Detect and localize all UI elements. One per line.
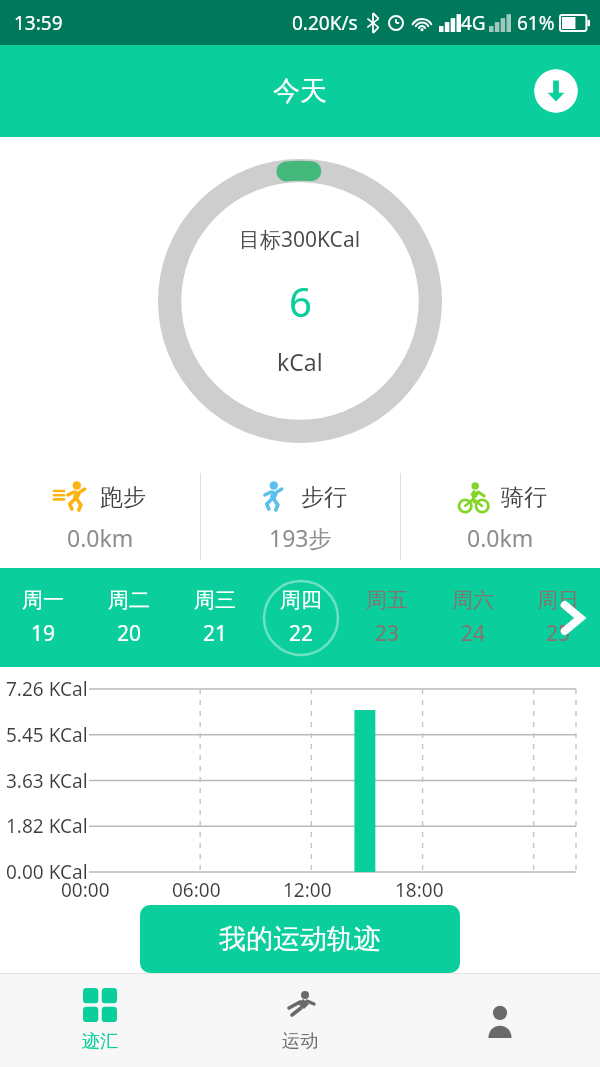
staticText: 迹汇 [82,1030,118,1053]
staticText: 步行 [301,483,347,512]
button[interactable]: Next week [544,590,600,646]
staticText: 18:00 [395,877,444,903]
staticText: 23 [375,619,400,648]
staticText: 20 [117,619,142,648]
staticText: 6 [289,274,312,328]
button[interactable]: 运动 [200,974,400,1067]
staticText: 19 [31,619,56,648]
button[interactable]: 骑行 [401,465,600,568]
staticText: 4G [461,10,486,36]
staticText: 周六 [452,587,494,613]
button[interactable]: 跑步 [0,465,200,568]
staticText: 周二 [108,587,150,613]
button[interactable]: 我的运动轨迹 [140,905,460,973]
staticText: 5.45 KCal [6,722,88,748]
staticText: 193步 [269,522,332,553]
staticText: 0.0km [467,522,534,553]
staticText: 目标300KCal [239,225,361,254]
button[interactable]: 周日 [516,568,600,667]
staticText: 周五 [366,587,408,613]
staticText: 06:00 [172,877,221,903]
staticText: 25 [546,619,571,648]
button[interactable]: Profile [400,974,600,1067]
staticText: 21 [203,619,228,648]
staticText: 0.00 KCal [6,859,88,885]
staticText: 0.20K/s [292,10,358,36]
staticText: 周日 [537,587,579,613]
staticText: 周三 [194,587,236,613]
staticText: 3.63 KCal [6,768,88,794]
button[interactable]: 周六 [430,568,516,667]
staticText: 13:59 [14,10,63,36]
staticText: 跑步 [100,483,146,512]
staticText: 22 [289,619,314,648]
button[interactable]: 周三 [172,568,258,667]
staticText: 0.0km [67,522,134,553]
button[interactable]: 周一 [0,568,86,667]
button[interactable]: 步行 [201,465,400,568]
button[interactable]: 周二 [86,568,172,667]
staticText: 1.82 KCal [6,813,88,839]
button[interactable]: 周四 [258,568,344,667]
staticText: 运动 [282,1030,318,1053]
staticText: 今天 [273,74,327,108]
staticText: 我的运动轨迹 [219,922,381,956]
staticText: 00:00 [61,877,110,903]
staticText: 12:00 [283,877,332,903]
staticText: 周四 [280,587,322,613]
staticText: 骑行 [501,483,547,512]
staticText: 24 [461,619,486,648]
button[interactable]: Download [534,69,578,113]
staticText: 7.26 KCal [6,676,88,702]
button[interactable]: 迹汇 [0,974,200,1067]
staticText: kCal [277,346,323,377]
button[interactable]: 周五 [344,568,430,667]
staticText: 周一 [22,587,64,613]
staticText: 61% [517,10,555,36]
